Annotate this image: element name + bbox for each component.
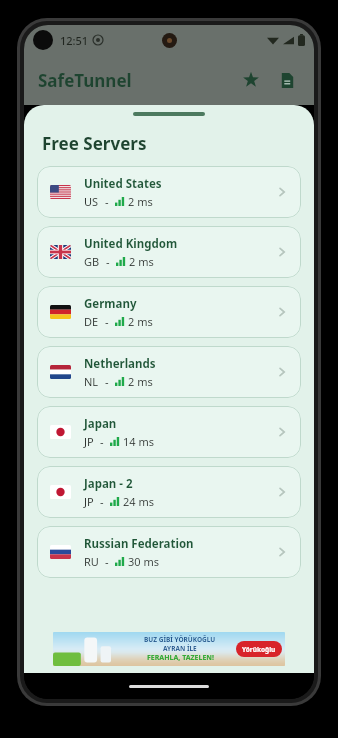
staticText: GB — [84, 254, 100, 269]
staticText: - — [105, 194, 109, 209]
staticText: United States — [84, 176, 162, 192]
staticText: - — [100, 434, 104, 449]
staticText: JP — [84, 494, 94, 509]
staticText: Free Servers — [42, 132, 147, 155]
staticText: Japan - 2 — [84, 476, 133, 492]
button[interactable]: Germany — [37, 286, 301, 338]
staticText: 2 ms — [128, 314, 153, 329]
staticText: Yörükoğlu — [242, 645, 276, 654]
staticText: - — [105, 554, 109, 569]
staticText: SafeTunnel — [38, 69, 132, 92]
staticText: FERAHLA, TAZELEN! — [147, 653, 214, 663]
staticText: Russian Federation — [84, 536, 194, 552]
staticText: - — [105, 374, 109, 389]
button[interactable]: Russian Federation — [37, 526, 301, 578]
staticText: RU — [84, 554, 99, 569]
button[interactable]: Japan - 2 — [37, 466, 301, 518]
button[interactable]: United Kingdom — [37, 226, 301, 278]
staticText: NL — [84, 374, 99, 389]
button[interactable]: Favorites — [236, 65, 266, 95]
staticText: 24 ms — [123, 494, 154, 509]
staticText: Japan — [84, 416, 117, 432]
button[interactable]: Logs — [272, 65, 302, 95]
staticText: - — [106, 254, 110, 269]
staticText: 2 ms — [128, 374, 153, 389]
staticText: AYRAN İLE — [163, 644, 197, 653]
staticText: 12:51 — [60, 33, 89, 48]
button[interactable]: BUZ GİBİ YÖRÜKOĞLU — [53, 632, 285, 666]
staticText: US — [84, 194, 99, 209]
staticText: 2 ms — [128, 194, 153, 209]
staticText: Netherlands — [84, 356, 156, 372]
staticText: Germany — [84, 296, 137, 312]
button[interactable]: United States — [37, 166, 301, 218]
staticText: - — [105, 314, 109, 329]
staticText: - — [100, 494, 104, 509]
staticText: 30 ms — [128, 554, 159, 569]
button[interactable]: Netherlands — [37, 346, 301, 398]
staticText: 14 ms — [123, 434, 154, 449]
staticText: 2 ms — [129, 254, 154, 269]
button[interactable]: Japan — [37, 406, 301, 458]
staticText: JP — [84, 434, 94, 449]
staticText: DE — [84, 314, 99, 329]
staticText: United Kingdom — [84, 236, 178, 252]
staticText: BUZ GİBİ YÖRÜKOĞLU — [144, 635, 216, 644]
